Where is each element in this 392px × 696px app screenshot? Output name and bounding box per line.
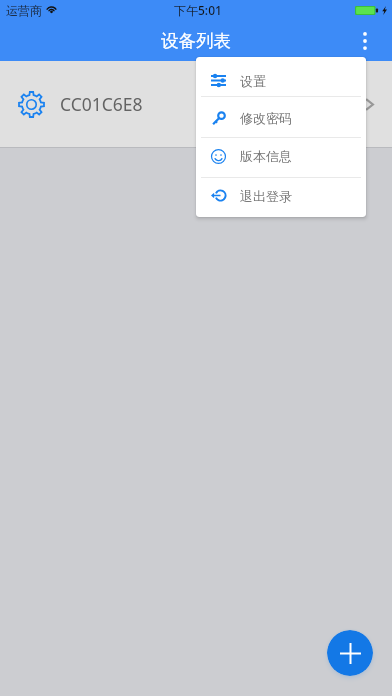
button[interactable]: CC01C6E8	[0, 61, 392, 147]
staticText: 运营商	[6, 3, 42, 18]
staticText: 退出登录	[240, 188, 292, 204]
staticText: 设备列表	[161, 30, 231, 52]
button[interactable]: 版本信息	[196, 138, 366, 177]
staticText: CC01C6E8	[60, 92, 143, 116]
button[interactable]: 设置	[196, 57, 366, 96]
staticText: 下午5:01	[174, 2, 222, 18]
button[interactable]: Add device	[327, 630, 373, 676]
button[interactable]: More options	[348, 20, 382, 61]
button[interactable]: 修改密码	[196, 97, 366, 137]
staticText: 设置	[240, 73, 266, 89]
staticText: 版本信息	[240, 148, 292, 164]
staticText: 修改密码	[240, 110, 292, 126]
button[interactable]: 退出登录	[196, 178, 366, 217]
